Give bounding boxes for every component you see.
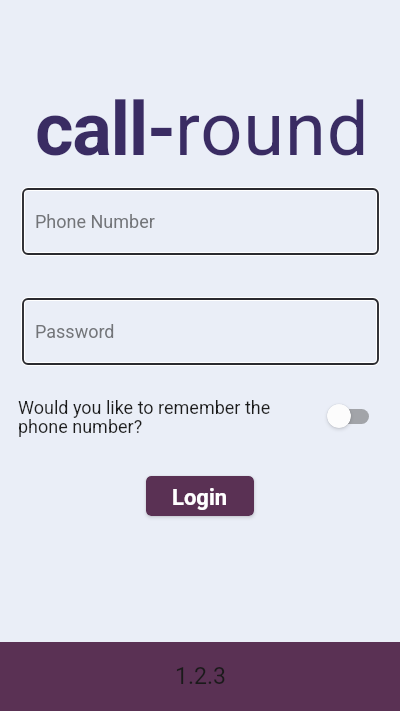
staticText: Phone Number xyxy=(35,211,155,232)
button[interactable]: Remember phone number toggle xyxy=(327,403,369,429)
button[interactable]: Password xyxy=(23,299,378,364)
button[interactable]: Login xyxy=(146,476,254,516)
button[interactable]: Phone Number xyxy=(23,189,378,254)
staticText: Login xyxy=(172,485,228,511)
staticText: Password xyxy=(35,321,115,342)
staticText: Would you like to remember the phone num… xyxy=(18,397,276,438)
staticText: call-round xyxy=(35,86,370,173)
staticText: 1.2.3 xyxy=(175,663,226,690)
